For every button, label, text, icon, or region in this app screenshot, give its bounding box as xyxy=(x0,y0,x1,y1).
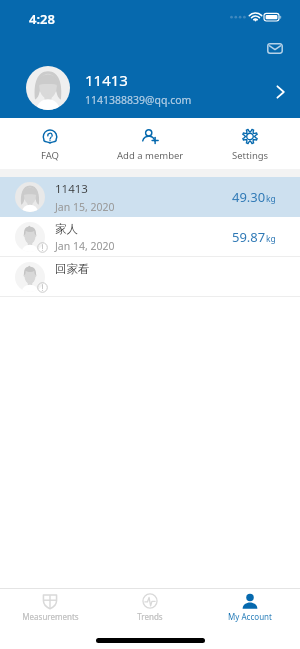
button[interactable]: FAQ xyxy=(0,118,100,169)
staticText: 11413 xyxy=(85,70,128,90)
button[interactable]: 回家看 xyxy=(0,257,300,297)
staticText: Add a member xyxy=(117,149,184,162)
staticText: 11413 xyxy=(55,181,88,197)
button[interactable]: Measurements xyxy=(0,589,100,622)
button[interactable]: 家人 xyxy=(0,217,300,257)
button[interactable]: Messages xyxy=(263,37,286,60)
staticText: Jan 14, 2020 xyxy=(55,239,115,253)
button[interactable]: Account details xyxy=(275,85,286,99)
button[interactable]: 11413 xyxy=(0,58,300,118)
staticText: 回家看 xyxy=(55,262,90,276)
staticText: My Account xyxy=(228,611,272,622)
staticText: 4:28 xyxy=(29,10,55,28)
staticText: kg xyxy=(266,193,276,205)
button[interactable]: Settings xyxy=(200,118,300,169)
button[interactable]: Add a member xyxy=(100,118,200,169)
button[interactable]: Trends xyxy=(100,589,200,622)
staticText: FAQ xyxy=(41,149,60,162)
button[interactable]: My Account xyxy=(200,589,300,622)
staticText: 59.87 xyxy=(232,228,266,246)
staticText: Measurements xyxy=(22,611,79,622)
staticText: Trends xyxy=(137,611,163,622)
staticText: 49.30 xyxy=(232,188,266,206)
staticText: Jan 15, 2020 xyxy=(55,200,115,214)
staticText: Settings xyxy=(232,149,269,162)
staticText: 1141388839@qq.com xyxy=(85,93,192,107)
staticText: kg xyxy=(266,233,276,245)
button[interactable]: 11413 xyxy=(0,177,300,217)
staticText: 家人 xyxy=(55,222,78,236)
